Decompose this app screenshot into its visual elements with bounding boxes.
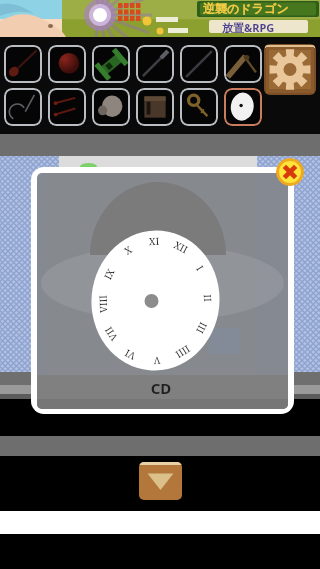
button[interactable]: Item slot 12 (224, 88, 262, 126)
button[interactable]: Item slot 6 (224, 45, 262, 83)
button[interactable]: Item slot 9 (92, 88, 130, 126)
staticText: 放置&RPG (222, 20, 275, 35)
button[interactable]: Item slot 11 (180, 88, 218, 126)
staticText: II (200, 287, 215, 309)
button[interactable]: Scroll down (139, 462, 182, 500)
button[interactable]: Item slot 3 (92, 45, 130, 83)
staticText: X (115, 238, 141, 262)
button[interactable]: Item slot 4 (136, 45, 174, 83)
staticText: I (188, 255, 212, 281)
button[interactable]: Item slot 10 (136, 88, 174, 126)
staticText: 逆襲のドラゴン (203, 1, 289, 16)
staticText: CD (146, 378, 176, 398)
staticText: IX (98, 261, 120, 287)
button[interactable]: Item slot 1 (4, 45, 42, 83)
button[interactable]: Settings (264, 44, 316, 95)
staticText: XI (143, 233, 165, 248)
staticText: III (191, 315, 213, 341)
staticText: IIII (170, 340, 196, 364)
button[interactable]: Item slot 5 (180, 45, 218, 83)
button[interactable]: Item slot 2 (48, 45, 86, 83)
staticText: VIII (95, 293, 110, 315)
button[interactable]: Item slot 8 (48, 88, 86, 126)
button[interactable]: Advertisement (0, 0, 320, 37)
button[interactable]: Item slot 7 (4, 88, 42, 126)
staticText: XII (168, 236, 194, 258)
button[interactable]: Close (276, 158, 304, 186)
staticText: V (146, 353, 168, 368)
staticText: VI (117, 344, 143, 366)
staticText: VII (99, 321, 123, 347)
